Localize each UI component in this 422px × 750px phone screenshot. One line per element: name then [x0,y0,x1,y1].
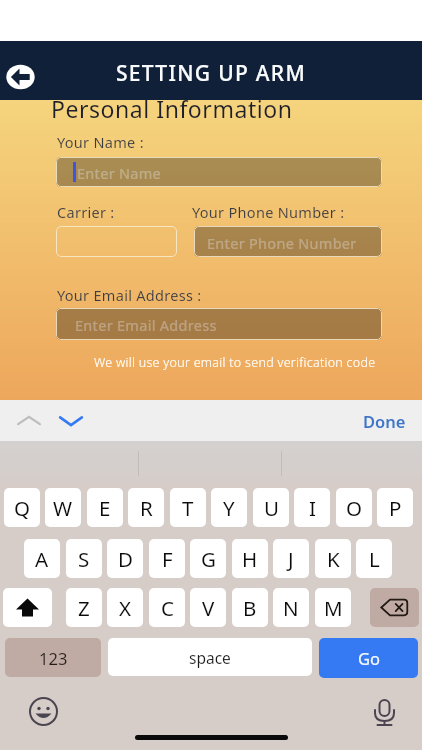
button[interactable]: Enter Phone Number [194,226,382,257]
button[interactable]: 123 [5,638,101,677]
staticText: 123 [39,647,68,669]
staticText: C [161,594,174,622]
staticText: B [243,594,257,622]
staticText: SETTING UP ARM [0,59,422,88]
button[interactable]: J [273,539,309,578]
staticText: N [283,594,299,622]
staticText: Your Name : [57,132,144,152]
staticText: We will use your email to send verificat… [94,354,376,371]
button[interactable]: Q [4,488,40,527]
button[interactable]: E [87,488,123,527]
staticText: K [327,545,340,573]
button[interactable]: R [128,488,164,527]
staticText: A [35,545,49,573]
staticText: G [201,545,216,573]
button[interactable]: O [336,488,372,527]
staticText: E [99,494,111,522]
button[interactable]: D [107,539,143,578]
button[interactable]: S [66,539,102,578]
staticText: Done [363,410,406,432]
staticText: Z [78,594,90,622]
button[interactable]: Previous field [12,408,46,434]
staticText: Personal Information [51,93,293,124]
staticText: Go [358,647,380,669]
button[interactable]: Dictation [371,697,398,724]
button[interactable]: Go [319,638,418,678]
button[interactable]: X [107,588,143,627]
button[interactable]: Done [353,405,415,437]
staticText: W [53,494,73,522]
staticText: F [162,545,173,573]
button[interactable]: T [170,488,206,527]
staticText: P [389,494,402,522]
staticText: J [288,545,294,573]
button[interactable]: Z [66,588,102,627]
button[interactable]: B [232,588,268,627]
button[interactable]: V [190,588,226,627]
button[interactable]: M [315,588,351,627]
staticText: Enter Phone Number [207,233,357,253]
button[interactable]: Enter Name [56,157,382,187]
button[interactable]: Y [211,488,247,527]
staticText: Enter Email Address [75,315,217,335]
staticText: O [346,494,363,522]
staticText: S [78,545,90,573]
button[interactable]: space [108,638,312,676]
staticText: space [189,647,231,668]
staticText: L [369,545,380,573]
staticText: Carrier : [57,202,115,222]
button[interactable]: Backspace [370,588,419,627]
staticText: U [264,494,279,522]
button[interactable]: H [232,539,268,578]
staticText: Enter Name [77,163,162,183]
staticText: M [324,594,343,622]
staticText: V [202,594,215,622]
button[interactable]: Enter Email Address [56,308,382,340]
staticText: H [242,545,258,573]
button[interactable]: K [315,539,351,578]
button[interactable]: Back [4,62,37,92]
staticText: Q [14,494,31,522]
staticText: T [182,494,194,522]
button[interactable]: I [294,488,330,527]
button[interactable]: F [149,539,185,578]
button[interactable] [56,226,177,257]
button[interactable]: Emoji [29,697,58,726]
staticText: I [309,494,316,522]
staticText: R [140,494,153,522]
button[interactable]: P [377,488,413,527]
button[interactable]: G [190,539,226,578]
button[interactable]: N [273,588,309,627]
staticText: D [118,545,133,573]
button[interactable]: C [149,588,185,627]
button[interactable]: Shift [3,588,52,627]
staticText: Y [223,494,235,522]
button[interactable]: Next field [54,408,88,434]
button[interactable]: L [356,539,392,578]
staticText: X [119,594,132,622]
staticText: Your Phone Number : [192,202,345,222]
button[interactable]: A [24,539,60,578]
staticText: Your Email Address : [57,285,202,305]
button[interactable]: U [253,488,289,527]
button[interactable]: W [45,488,81,527]
